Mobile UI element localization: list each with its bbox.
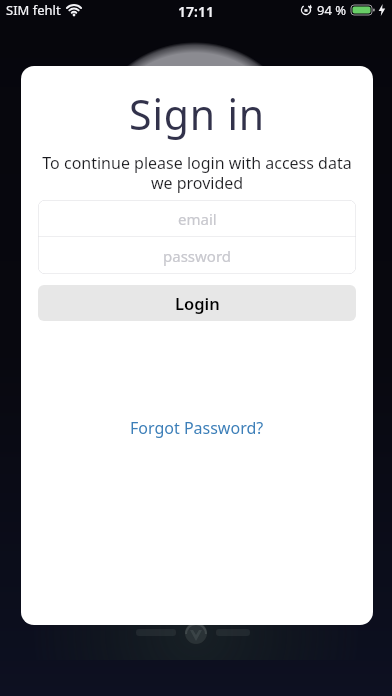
staticText: Forgot Password? (130, 417, 264, 439)
staticText: Login (175, 292, 220, 314)
button[interactable]: Forgot Password? (130, 417, 264, 439)
staticText: 17:11 (178, 2, 214, 21)
staticText: 94 % (317, 1, 347, 19)
staticText: Sign in (129, 86, 265, 142)
staticText: SIM fehlt (6, 1, 61, 19)
staticText: password (163, 246, 231, 266)
button[interactable]: Login (38, 285, 356, 321)
button[interactable]: email (38, 200, 356, 237)
staticText: To continue please login with access dat… (42, 152, 352, 193)
staticText: email (178, 209, 217, 229)
button[interactable]: password (38, 237, 356, 274)
